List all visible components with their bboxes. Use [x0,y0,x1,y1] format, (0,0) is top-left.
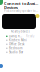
button[interactable] [2,14,36,29]
button[interactable]: Account [0,64,3,68]
staticText: Nearby devices [10,30,29,33]
button[interactable]: Studio Bar [4,51,35,54]
staticText: Bedroom [9,46,22,50]
staticText: Pick a nearby speaker to start [4,9,38,13]
staticText: Studio Bar [9,50,23,54]
staticText: Devices [4,5,18,10]
button[interactable]: Pair [35,14,39,18]
staticText: Living Room [9,34,23,38]
button[interactable]: Kitchen Mini [4,39,35,42]
staticText: Office Desk [9,42,24,46]
button[interactable]: Living Room [4,35,35,38]
staticText: Connect to Available [4,1,38,6]
button[interactable]: Office Desk [4,43,35,46]
staticText: Ready [26,34,34,38]
button[interactable]: Bedroom [4,47,35,50]
staticText: Kitchen Mini [9,38,27,42]
